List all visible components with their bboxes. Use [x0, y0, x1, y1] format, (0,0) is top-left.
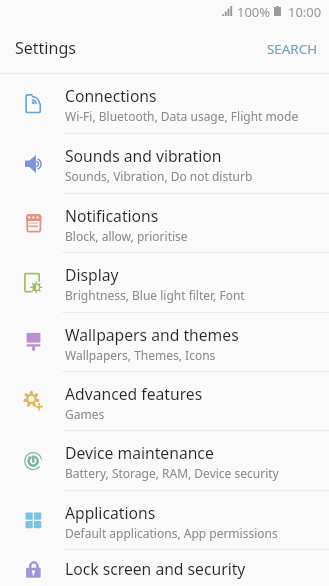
staticText: 10:00 [288, 3, 322, 21]
staticText: Advanced features [65, 383, 203, 404]
staticText: SEARCH [267, 40, 318, 58]
button[interactable]: Sounds and vibration [0, 134, 329, 193]
button[interactable]: Notifications [0, 194, 329, 252]
button[interactable]: Device maintenance [0, 431, 329, 490]
staticText: Games [65, 406, 105, 422]
button[interactable]: Lock screen and security [0, 539, 329, 586]
staticText: Display [65, 264, 119, 285]
button[interactable]: SEARCH [253, 27, 329, 71]
other: Display [23, 273, 43, 293]
staticText: Applications [65, 502, 156, 523]
staticText: Block, allow, prioritise [65, 228, 188, 244]
button[interactable]: Wallpapers and themes [0, 313, 329, 371]
staticText: Sounds and vibration [65, 145, 222, 166]
staticText: Wallpapers and themes [65, 324, 239, 345]
button[interactable]: Applications [0, 491, 329, 549]
staticText: Notifications [65, 205, 159, 226]
button[interactable]: Connections [0, 74, 329, 133]
button[interactable]: Display [0, 253, 329, 312]
other: Applications [23, 510, 43, 530]
other: Wallpapers and themes [23, 332, 43, 352]
staticText: Connections [65, 85, 157, 106]
staticText: Lock screen and security [65, 558, 246, 579]
staticText: Settings [15, 37, 76, 59]
staticText: Wallpapers, Themes, Icons [65, 347, 216, 363]
staticText: Wi-Fi, Bluetooth, Data usage, Flight mod… [65, 108, 299, 124]
other: Sounds and vibration [23, 154, 43, 174]
staticText: Sounds, Vibration, Do not disturb [65, 168, 253, 184]
other: Advanced features [23, 391, 43, 411]
other: Notifications [23, 213, 43, 233]
staticText: Default applications, App permissions [65, 525, 278, 541]
staticText: 100% [237, 3, 271, 21]
other: Lock screen and security [23, 559, 43, 579]
button[interactable]: Advanced features [0, 372, 329, 430]
other: Device maintenance [23, 451, 43, 471]
staticText: Device maintenance [65, 442, 214, 463]
staticText: Battery, Storage, RAM, Device security [65, 465, 279, 481]
other: Connections [23, 94, 43, 114]
staticText: Brightness, Blue light filter, Font [65, 287, 245, 303]
